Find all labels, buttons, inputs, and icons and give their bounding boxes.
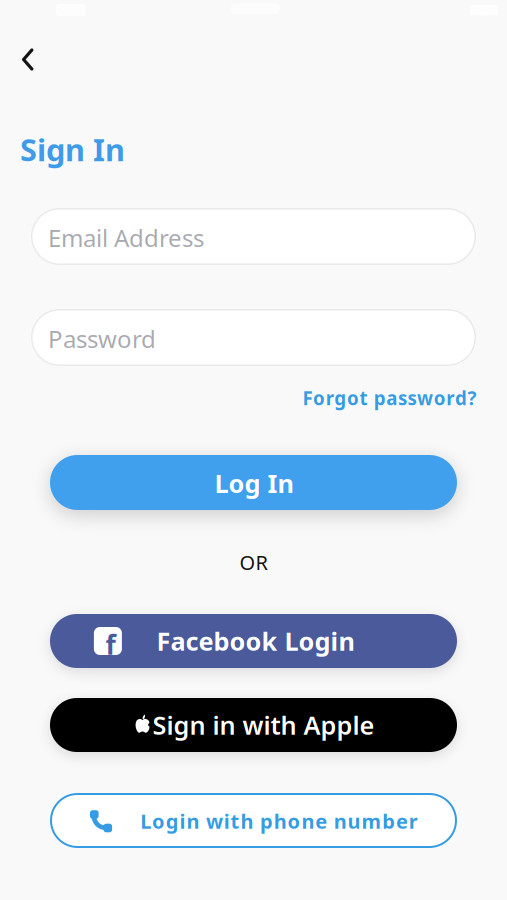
staticText: f (105, 627, 115, 662)
staticText: OR (239, 549, 267, 576)
button[interactable]: Login with phone number (50, 793, 457, 848)
staticText: Sign In (20, 129, 125, 170)
button[interactable]: Email Address (31, 208, 476, 265)
button[interactable]: Log In (50, 455, 457, 510)
staticText: Sign in with Apple (152, 708, 374, 742)
staticText: Login with phone number (140, 808, 418, 834)
button[interactable]: Sign in with Apple (50, 698, 457, 752)
staticText: Email Address (48, 222, 204, 254)
button[interactable]: Forgot password? (256, 386, 476, 410)
staticText: Facebook Login (157, 624, 355, 658)
button[interactable] (6, 37, 50, 81)
button[interactable]: Facebook Login (50, 614, 457, 668)
staticText: Password (48, 323, 156, 355)
button[interactable]: Password (31, 309, 476, 366)
staticText: Log In (214, 466, 293, 500)
staticText: Forgot password? (302, 386, 476, 410)
